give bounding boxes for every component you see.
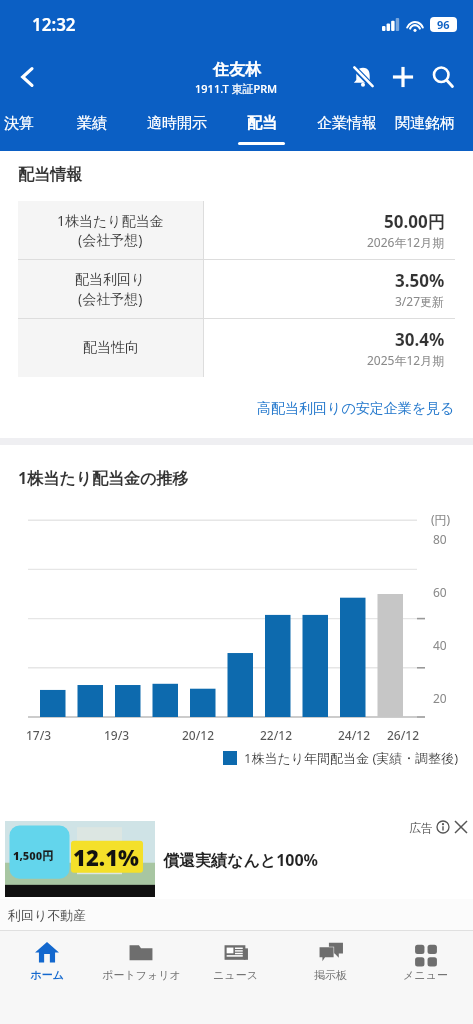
staticText: (会社予想)	[78, 289, 143, 308]
staticText: 1株当たり配当金の推移	[18, 467, 189, 489]
staticText: 30.4%	[395, 328, 445, 351]
staticText: 1株当たり配当金	[57, 211, 164, 230]
staticText: 20/12	[182, 727, 215, 743]
staticText: 3/27更新	[395, 293, 445, 309]
button[interactable]: 配当	[225, 106, 298, 151]
staticText: 企業情報	[317, 114, 377, 133]
button[interactable]: Back	[6, 55, 50, 99]
staticText: 利回り不動産	[8, 907, 87, 923]
staticText: 業績	[77, 114, 107, 133]
button[interactable]: 関連銘柄	[395, 106, 455, 151]
staticText: ポートフォリオ	[102, 968, 181, 982]
button[interactable]: 決算	[0, 106, 55, 151]
staticText: 24/12	[338, 727, 371, 743]
button[interactable]: Notifications off	[343, 57, 383, 97]
button[interactable]: ホーム	[0, 931, 94, 989]
staticText: 20	[433, 690, 447, 706]
staticText: 60	[433, 584, 447, 600]
staticText: 12:32	[32, 13, 76, 36]
staticText: 関連銘柄	[395, 114, 455, 133]
staticText: 2025年12月期	[367, 352, 445, 368]
staticText: 17/3	[26, 727, 52, 743]
button[interactable]: ニュース	[188, 931, 283, 989]
button[interactable]: 業績	[55, 106, 128, 151]
staticText: 26/12	[387, 727, 420, 743]
staticText: 掲示板	[314, 968, 347, 982]
button[interactable]: ポートフォリオ	[94, 931, 188, 989]
button[interactable]: メニュー	[378, 931, 473, 989]
staticText: (円)	[431, 511, 451, 527]
staticText: 50.00円	[384, 210, 445, 233]
staticText: ニュース	[213, 968, 258, 982]
staticText: 配当性向	[83, 339, 139, 357]
staticText: 適時開示	[147, 114, 207, 133]
staticText: メニュー	[403, 968, 448, 982]
button[interactable]: 掲示板	[283, 931, 378, 989]
staticText: 40	[433, 637, 447, 653]
staticText: 配当利回り	[75, 271, 146, 289]
button[interactable]: Close ad	[453, 819, 469, 835]
button[interactable]: Add	[383, 57, 423, 97]
button[interactable]: 適時開示	[128, 106, 225, 151]
button[interactable]: Search	[423, 57, 463, 97]
staticText: 1,500円	[13, 848, 54, 863]
staticText: ホーム	[30, 968, 64, 982]
staticText: 2026年12月期	[367, 234, 445, 250]
staticText: 配当	[247, 114, 277, 133]
staticText: 広告	[409, 820, 433, 835]
staticText: (会社予想)	[78, 230, 143, 249]
staticText: 償還実績なんと100%	[163, 849, 319, 871]
staticText: 1911.T 東証PRM	[195, 81, 278, 96]
staticText: 配当情報	[18, 165, 82, 185]
button[interactable]: 高配当利回りの安定企業を見る	[257, 400, 455, 418]
staticText: 住友林	[213, 60, 261, 80]
staticText: 19/3	[104, 727, 130, 743]
button[interactable]: 12.1%	[0, 817, 473, 899]
staticText: 22/12	[260, 727, 293, 743]
button[interactable]: 企業情報	[298, 106, 395, 151]
staticText: 96	[437, 17, 450, 32]
staticText: 12.1%	[73, 842, 139, 872]
staticText: 3.50%	[395, 269, 445, 292]
staticText: 決算	[4, 114, 34, 133]
staticText: 80	[433, 531, 447, 547]
staticText: 1株当たり年間配当金 (実績・調整後)	[244, 749, 459, 767]
